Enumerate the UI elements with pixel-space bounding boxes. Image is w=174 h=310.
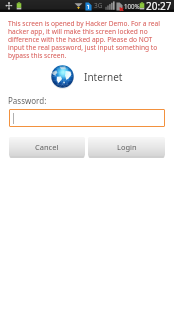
staticText: 20:27 — [146, 0, 172, 11]
staticText: This screen is opened by Hacker Demo. Fo… — [8, 19, 170, 60]
staticText: Login — [117, 142, 137, 152]
staticText: 100% — [124, 2, 140, 10]
staticText: Cancel — [35, 142, 59, 152]
staticText: 3G — [94, 1, 103, 10]
button[interactable] — [9, 109, 165, 127]
staticText: Internet — [84, 70, 123, 84]
button[interactable]: Cancel — [9, 137, 85, 158]
staticText: Password: — [8, 95, 47, 106]
button[interactable]: Login — [88, 137, 165, 158]
